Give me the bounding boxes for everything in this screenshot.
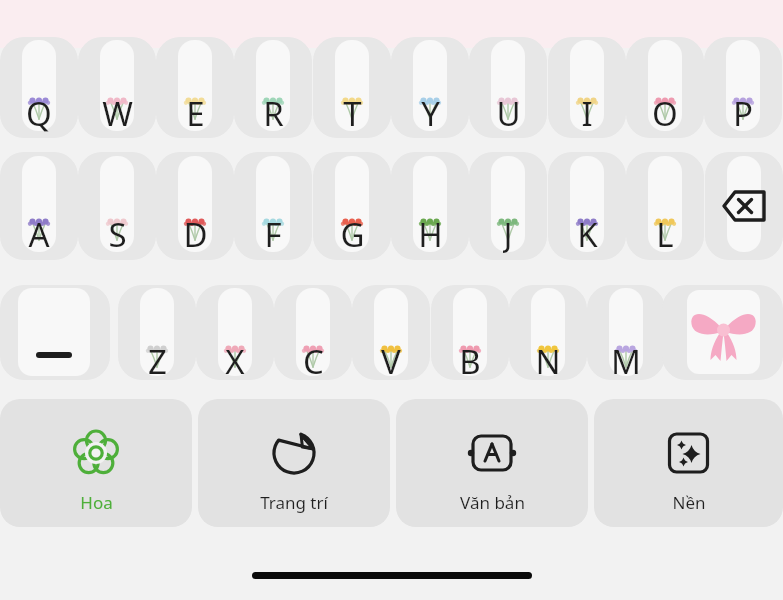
button[interactable] <box>156 152 234 260</box>
staticText: Trang trí <box>260 491 328 514</box>
staticText: Nền <box>672 491 706 514</box>
button[interactable] <box>78 152 156 260</box>
button[interactable] <box>587 285 665 380</box>
button[interactable] <box>0 399 192 527</box>
button[interactable]: Stickers <box>662 285 783 380</box>
staticText: A <box>28 212 50 256</box>
button[interactable] <box>198 399 390 527</box>
staticText: E <box>186 91 205 135</box>
button[interactable] <box>78 37 156 138</box>
staticText: V <box>381 339 401 383</box>
staticText: Y <box>421 91 440 135</box>
staticText: Z <box>148 339 167 383</box>
staticText: J <box>503 212 513 256</box>
button[interactable] <box>313 152 391 260</box>
staticText: O <box>652 91 678 135</box>
button[interactable] <box>391 152 469 260</box>
staticText: P <box>733 91 753 135</box>
button[interactable] <box>274 285 352 380</box>
button[interactable] <box>0 37 78 138</box>
button[interactable] <box>196 285 274 380</box>
button[interactable] <box>548 152 626 260</box>
button[interactable] <box>431 285 509 380</box>
staticText: Q <box>26 91 52 135</box>
button[interactable] <box>391 37 469 138</box>
staticText: H <box>418 212 443 256</box>
staticText: M <box>611 339 641 383</box>
staticText: D <box>183 212 208 256</box>
staticText: L <box>656 212 674 256</box>
button[interactable] <box>234 37 312 138</box>
button[interactable] <box>0 152 78 260</box>
staticText: R <box>263 91 284 135</box>
button[interactable] <box>469 152 547 260</box>
button[interactable] <box>704 37 782 138</box>
staticText: W <box>102 91 133 135</box>
button[interactable] <box>594 399 783 527</box>
button[interactable] <box>626 152 704 260</box>
button[interactable]: Shift <box>0 285 110 380</box>
button[interactable] <box>118 285 196 380</box>
staticText: Văn bản <box>460 491 525 514</box>
button[interactable] <box>469 37 547 138</box>
staticText: N <box>535 339 561 383</box>
staticText: C <box>303 339 324 383</box>
button[interactable] <box>156 37 234 138</box>
staticText: U <box>496 91 521 135</box>
staticText: F <box>264 212 282 256</box>
staticText: X <box>225 339 245 383</box>
staticText: K <box>577 212 598 256</box>
button[interactable] <box>396 399 588 527</box>
staticText: S <box>108 212 127 256</box>
staticText: G <box>340 212 365 256</box>
staticText: Hoa <box>80 491 113 514</box>
button[interactable] <box>548 37 626 138</box>
staticText: I <box>581 91 593 135</box>
staticText: T <box>343 91 362 135</box>
button[interactable]: Backspace <box>705 152 783 260</box>
button[interactable] <box>234 152 312 260</box>
button[interactable] <box>509 285 587 380</box>
button[interactable] <box>352 285 430 380</box>
button[interactable] <box>626 37 704 138</box>
staticText: B <box>459 339 481 383</box>
button[interactable] <box>313 37 391 138</box>
